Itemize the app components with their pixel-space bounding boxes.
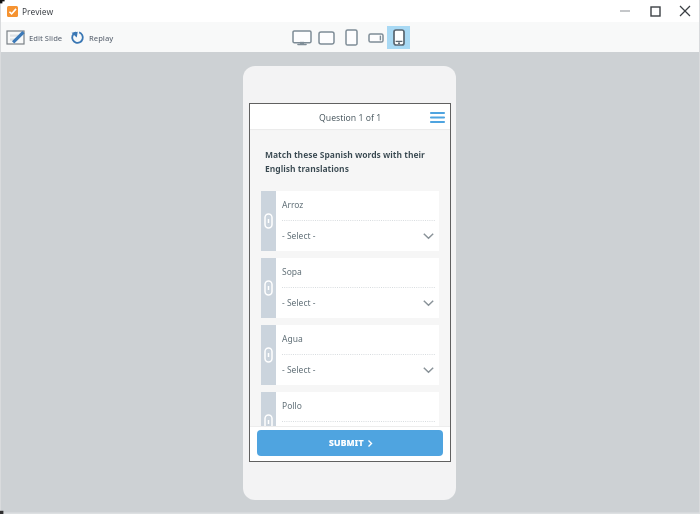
staticText: SUBMIT xyxy=(329,437,364,449)
button[interactable]: Agua xyxy=(261,325,439,385)
staticText: Arroz xyxy=(282,199,304,211)
staticText: Pollo xyxy=(282,400,302,412)
button[interactable]: Tablet portrait xyxy=(340,26,363,49)
staticText: Agua xyxy=(282,333,303,345)
staticText: Sopa xyxy=(282,266,302,278)
button[interactable]: Phone portrait xyxy=(387,26,410,49)
staticText: Match these Spanish words with their Eng… xyxy=(265,149,443,174)
staticText: - Select - xyxy=(282,364,316,376)
staticText: - Select - xyxy=(282,297,316,309)
button[interactable]: Close xyxy=(670,0,700,22)
staticText: Replay xyxy=(89,33,114,43)
button[interactable]: Tablet xyxy=(315,26,338,49)
button[interactable]: Replay xyxy=(71,31,114,44)
button[interactable]: Menu xyxy=(428,108,446,126)
button[interactable]: Pollo xyxy=(261,392,439,452)
button[interactable]: Maximize xyxy=(640,0,670,22)
button[interactable]: Arroz xyxy=(261,191,439,251)
button[interactable]: Minimize xyxy=(610,0,640,22)
button[interactable]: SUBMIT xyxy=(257,430,443,456)
button[interactable]: Sopa xyxy=(261,258,439,318)
staticText: Edit Slide xyxy=(29,33,63,43)
staticText: Question 1 of 1 xyxy=(319,112,382,124)
button[interactable]: Phone landscape xyxy=(364,26,387,49)
staticText: Preview xyxy=(22,6,54,17)
staticText: - Select - xyxy=(282,230,316,242)
button[interactable]: Edit Slide xyxy=(7,31,63,44)
button[interactable]: Desktop xyxy=(290,26,313,49)
